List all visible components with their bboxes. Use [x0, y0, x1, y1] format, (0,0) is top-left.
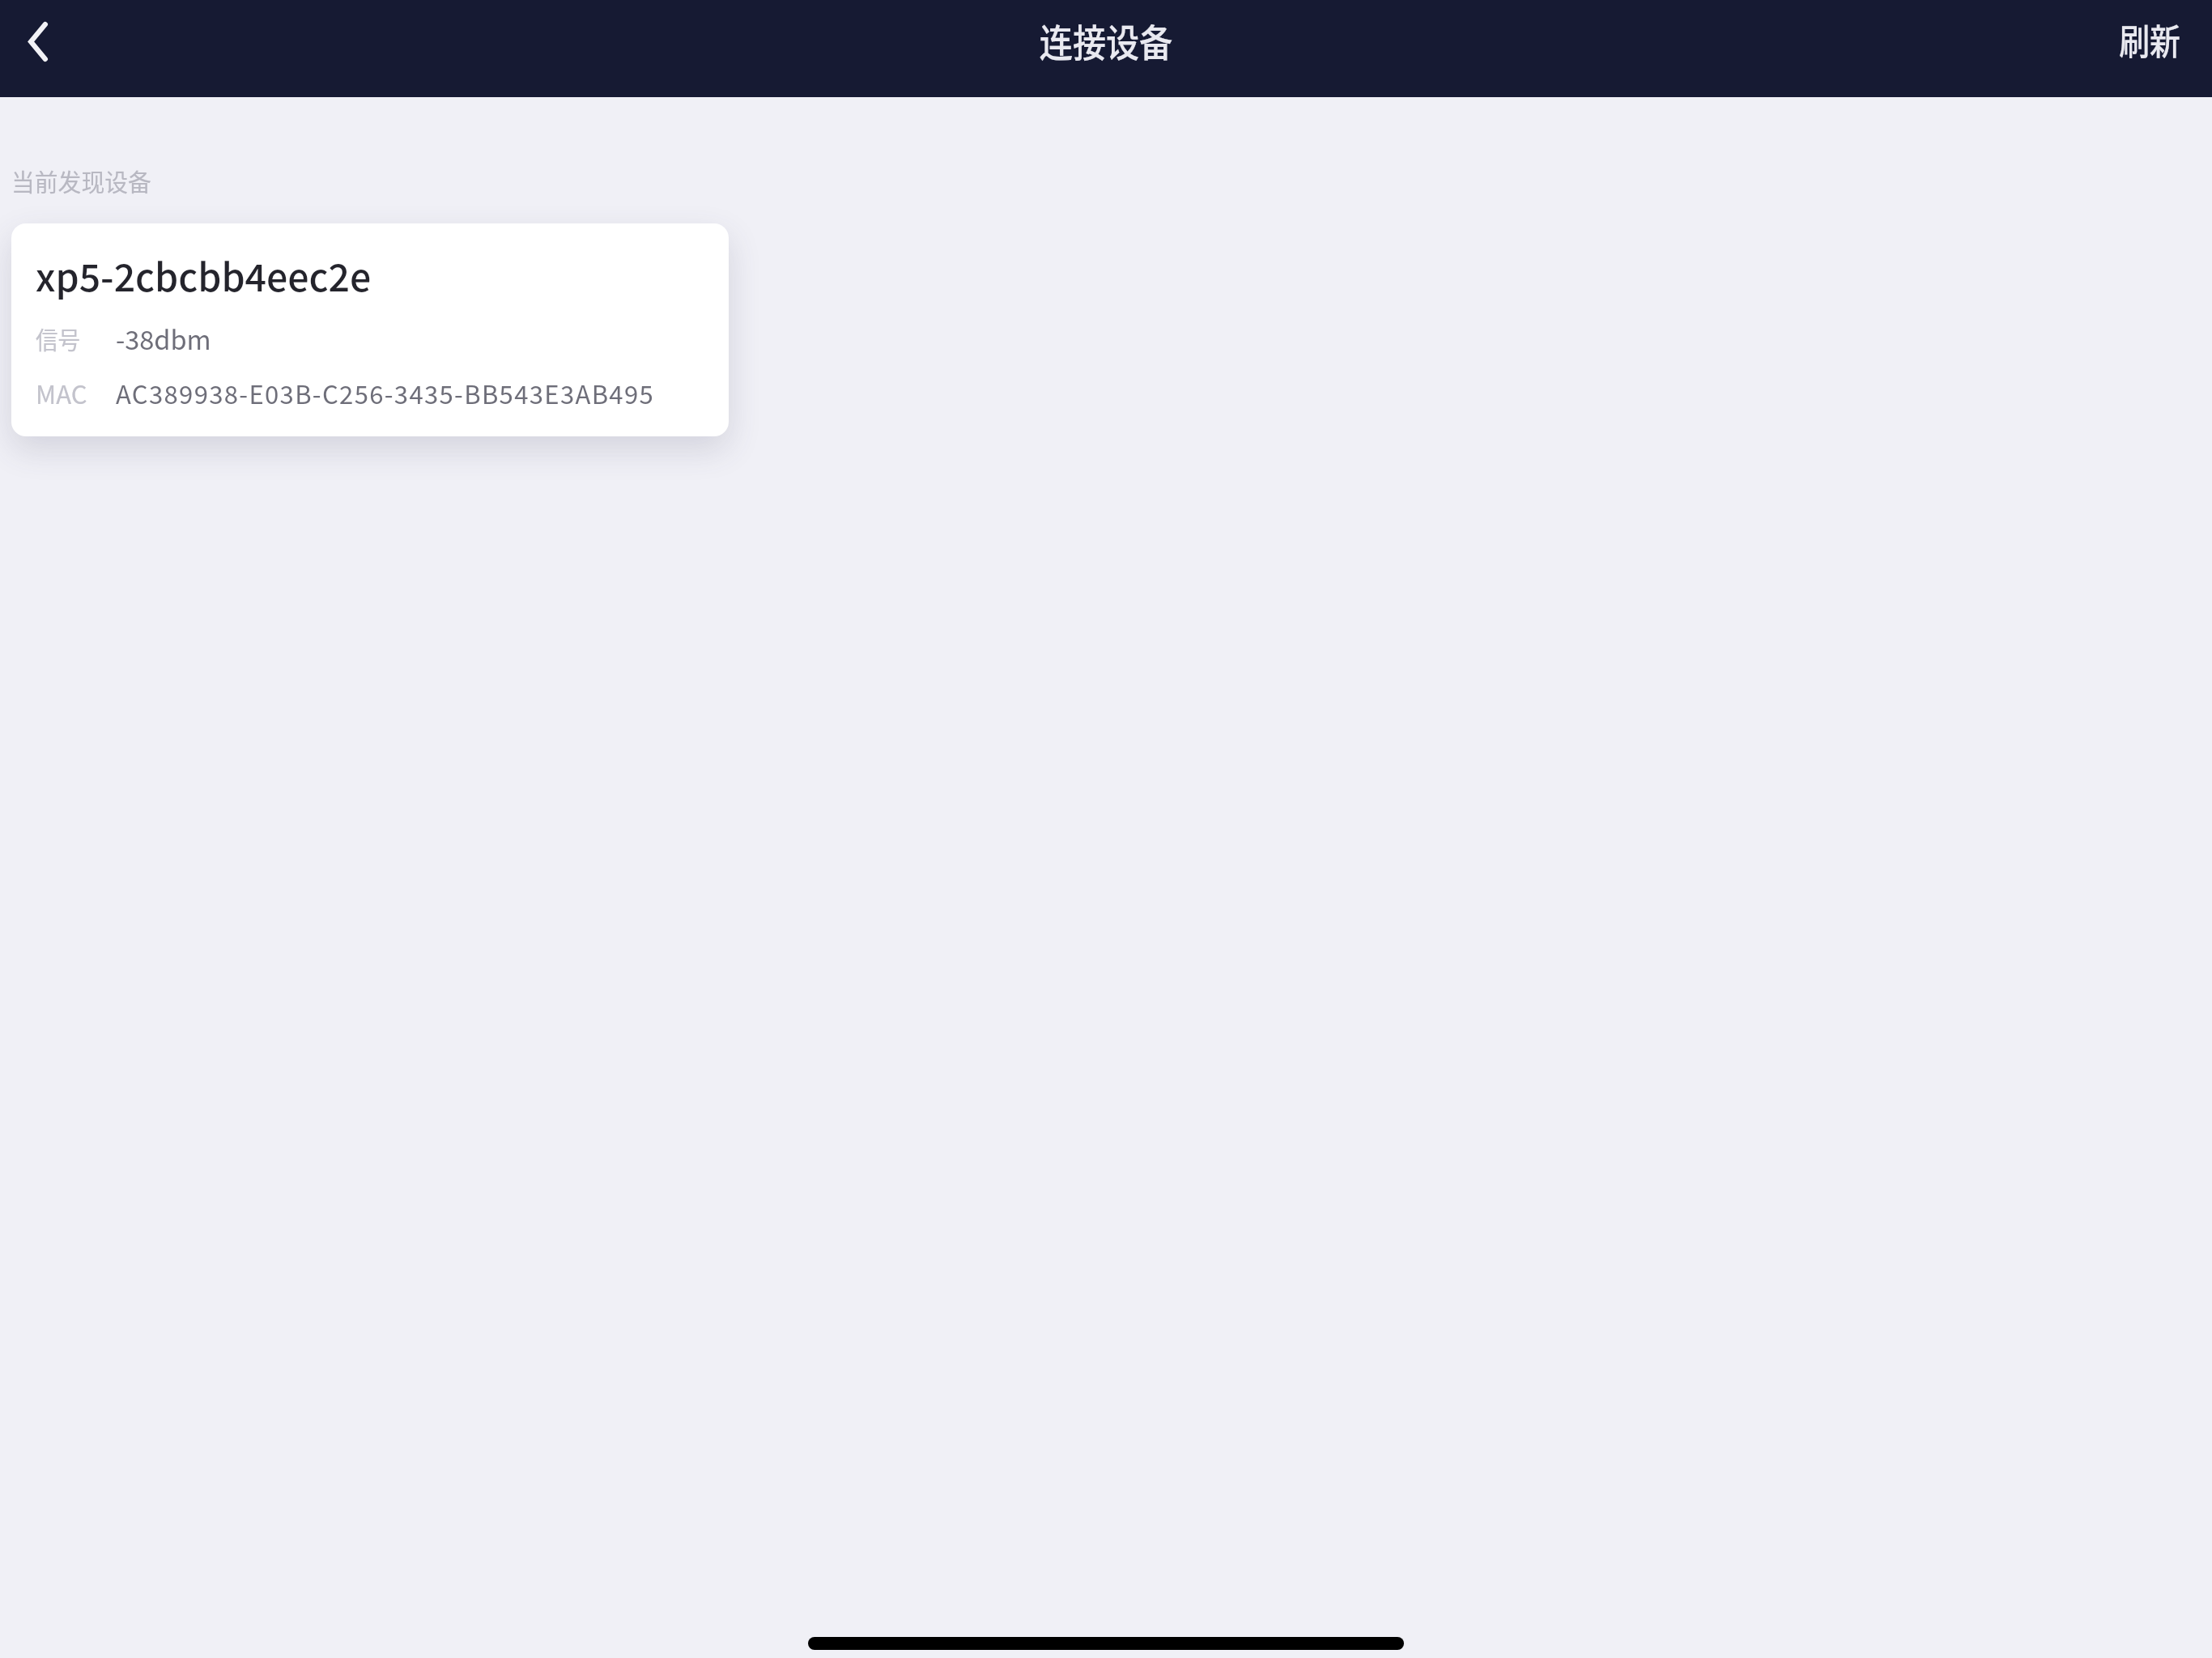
staticText: -38dbm [116, 319, 211, 357]
button[interactable]: 刷新 [2087, 0, 2212, 88]
button[interactable]: xp5-2cbcbb4eec2e [11, 223, 729, 436]
staticText: 连接设备 [1039, 12, 1173, 67]
staticText: xp5-2cbcbb4eec2e [36, 248, 372, 302]
staticText: 信号 [36, 321, 80, 355]
staticText: MAC [36, 375, 87, 411]
staticText: 刷新 [2119, 14, 2180, 66]
button[interactable]: Back [0, 0, 81, 97]
staticText: 当前发现设备 [11, 163, 151, 198]
staticText: AC389938-E03B-C256-3435-BB543E3AB495 [116, 375, 655, 411]
